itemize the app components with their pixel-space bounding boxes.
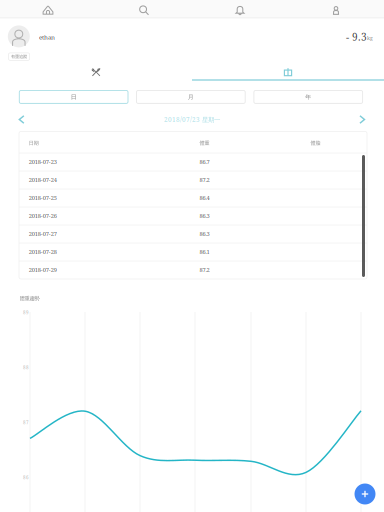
button[interactable]: 日 [19, 90, 128, 103]
staticText: 體重 [199, 140, 209, 146]
staticText: 86.7 [199, 158, 209, 166]
staticText: 2018-07-26 [29, 212, 57, 220]
staticText: 2018/07/23 星期一 [164, 115, 220, 124]
staticText: 年 [305, 93, 311, 101]
staticText: 2018-07-28 [29, 248, 57, 256]
staticText: 2018-07-24 [29, 176, 57, 184]
button[interactable]: Add entry [354, 483, 375, 504]
button[interactable]: Previous day [17, 115, 26, 124]
staticText: kg [367, 34, 373, 41]
button[interactable]: Home [43, 5, 53, 15]
staticText: 體脂 [310, 140, 320, 146]
staticText: - 9.3 [346, 30, 367, 44]
staticText: 日期 [29, 140, 39, 146]
staticText: ethan [39, 33, 55, 41]
staticText: 2018-07-27 [29, 230, 57, 238]
button[interactable]: Next day [358, 115, 366, 124]
button[interactable]: Notifications [235, 5, 245, 15]
staticText: 2018-07-29 [29, 266, 57, 274]
staticText: 有重追蹤 [11, 54, 27, 59]
staticText: 體重趨勢 [19, 295, 39, 302]
button[interactable]: 月 [136, 90, 245, 103]
staticText: 89 [23, 309, 29, 316]
staticText: 88 [23, 364, 29, 371]
button[interactable]: Meals [92, 67, 100, 76]
button[interactable]: 年 [254, 90, 363, 103]
button[interactable]: Journal [284, 68, 292, 76]
button[interactable]: Profile [331, 6, 340, 15]
staticText: 日 [71, 93, 77, 101]
staticText: 87 [23, 419, 29, 426]
button[interactable]: Search [139, 5, 149, 15]
staticText: 87.2 [199, 176, 209, 184]
staticText: 86.3 [199, 230, 209, 238]
staticText: 86.1 [199, 248, 209, 256]
staticText: 86 [23, 474, 29, 481]
staticText: 2018-07-23 [29, 158, 57, 166]
staticText: 月 [188, 93, 194, 101]
staticText: 86.4 [199, 194, 209, 202]
staticText: 86.3 [199, 212, 209, 220]
staticText: 2018-07-25 [29, 194, 57, 202]
staticText: 87.2 [199, 266, 209, 274]
